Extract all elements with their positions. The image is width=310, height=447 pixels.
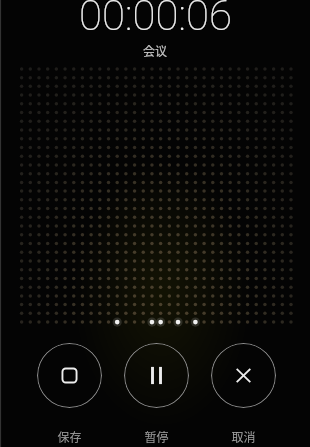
staticText: 会议 — [143, 42, 168, 59]
button[interactable]: 取消 — [208, 425, 278, 447]
button[interactable]: Cancel — [211, 343, 276, 408]
button[interactable]: 暂停 — [121, 425, 191, 447]
button[interactable]: 保存 — [34, 425, 104, 447]
staticText: 暂停 — [144, 428, 169, 445]
staticText: 保存 — [57, 428, 82, 445]
button[interactable]: Save — [37, 343, 102, 408]
staticText: 取消 — [231, 428, 256, 445]
button[interactable]: Pause — [124, 343, 189, 408]
staticText: 00:00:06 — [79, 0, 232, 31]
